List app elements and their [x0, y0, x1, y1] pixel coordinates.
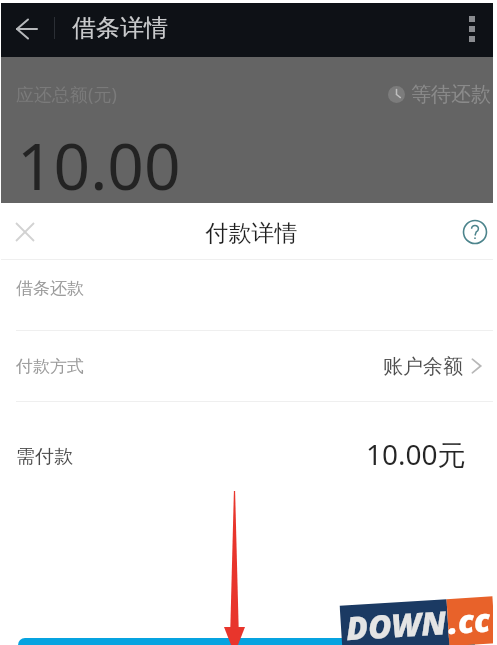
button[interactable]: More options: [447, 3, 497, 57]
staticText: 付款详情: [3, 219, 497, 248]
button[interactable]: Help: [453, 203, 497, 259]
button[interactable]: [18, 638, 475, 645]
staticText: 10.00元: [366, 435, 466, 473]
button[interactable]: 付款方式: [0, 331, 497, 401]
button[interactable]: 借条还款: [0, 260, 497, 330]
staticText: 借条详情: [72, 13, 168, 43]
staticText: 10.00: [17, 122, 181, 209]
staticText: 应还总额(元): [16, 82, 117, 107]
staticText: .cc: [447, 598, 492, 644]
button[interactable]: Close: [0, 203, 50, 259]
staticText: 需付款: [16, 445, 73, 469]
staticText: 借条还款: [16, 278, 84, 299]
staticText: 付款方式: [16, 356, 84, 377]
staticText: DOWN: [345, 600, 448, 645]
staticText: 账户余额: [383, 354, 463, 379]
button[interactable]: Back: [0, 3, 54, 57]
staticText: 等待还款: [411, 82, 491, 107]
